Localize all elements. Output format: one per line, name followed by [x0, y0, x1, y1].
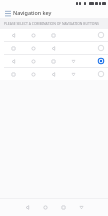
staticText: Navigation key — [13, 9, 52, 16]
staticText: PLEASE SELECT A COMBINATION OF NAVIGATIO… — [4, 21, 99, 26]
button[interactable]: Recents — [56, 200, 70, 214]
button[interactable]: Not selected — [0, 29, 108, 41]
button[interactable]: Not selected — [0, 42, 108, 54]
other: Selected — [97, 57, 105, 65]
button[interactable]: Home — [38, 200, 52, 214]
other: Not selected — [97, 44, 105, 52]
button[interactable]: Notifications — [74, 200, 88, 214]
button[interactable]: Back — [20, 200, 34, 214]
other: Not selected — [97, 31, 105, 39]
other: Not selected — [97, 70, 105, 78]
button[interactable]: Menu — [3, 8, 12, 17]
button[interactable]: Not selected — [0, 68, 108, 80]
button[interactable]: Selected — [0, 55, 108, 67]
